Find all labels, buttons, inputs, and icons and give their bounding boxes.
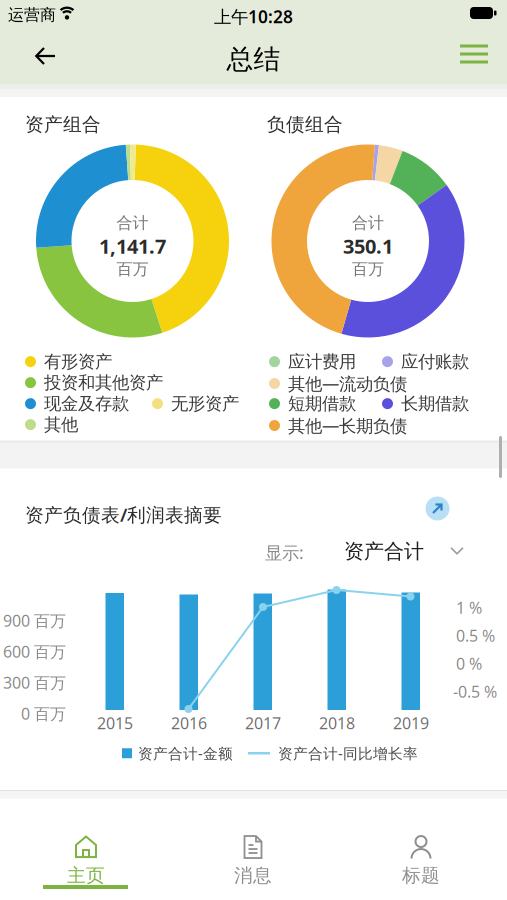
staticText: 现金及存款 <box>44 393 129 414</box>
staticText: 运营商 <box>8 5 56 25</box>
staticText: 投资和其他资产 <box>44 372 163 393</box>
staticText: 有形资产 <box>44 351 112 372</box>
staticText: 900 百万 <box>3 610 66 631</box>
button[interactable]: 消息 <box>193 828 313 894</box>
staticText: 百万 <box>116 259 148 279</box>
button[interactable]: 菜单 <box>450 34 498 74</box>
staticText: 显示: <box>265 541 304 564</box>
staticText: 应付账款 <box>401 351 469 372</box>
staticText: 无形资产 <box>171 393 239 414</box>
staticText: 2019 <box>393 712 429 734</box>
staticText: 应计费用 <box>288 351 356 372</box>
button[interactable]: 主页 <box>26 828 146 894</box>
staticText: 2016 <box>171 712 207 734</box>
staticText: 0.5 % <box>456 625 495 646</box>
staticText: 其他—长期负债 <box>288 414 407 437</box>
staticText: 2017 <box>245 712 281 734</box>
staticText: 上午10:28 <box>214 5 293 28</box>
staticText: 短期借款 <box>288 393 356 414</box>
staticText: 资产合计 <box>344 539 424 564</box>
staticText: 资产合计-同比增长率 <box>278 743 418 763</box>
staticText: 350.1 <box>343 233 393 259</box>
staticText: 600 百万 <box>3 641 66 662</box>
staticText: 资产负债表/利润表摘要 <box>25 502 222 527</box>
staticText: 资产合计-金额 <box>138 743 233 763</box>
staticText: 合计 <box>116 213 148 233</box>
staticText: 合计 <box>352 213 384 233</box>
staticText: 0 % <box>456 653 482 674</box>
staticText: 资产组合 <box>25 113 101 136</box>
staticText: 负债组合 <box>267 113 343 136</box>
staticText: 2015 <box>97 712 133 734</box>
staticText: 2018 <box>319 712 355 734</box>
staticText: 主页 <box>67 864 105 887</box>
staticText: 1 % <box>456 597 482 618</box>
staticText: 1,141.7 <box>99 233 166 259</box>
button[interactable]: 展开 <box>425 496 449 520</box>
staticText: 其他 <box>44 414 78 435</box>
staticText: 300 百万 <box>3 672 66 693</box>
staticText: 百万 <box>352 259 384 279</box>
staticText: -0.5 % <box>453 681 497 702</box>
staticText: 消息 <box>234 864 272 887</box>
staticText: 总结 <box>226 43 280 76</box>
staticText: 其他—流动负债 <box>288 372 407 395</box>
button[interactable]: 选择指标 <box>344 539 463 564</box>
staticText: 长期借款 <box>401 393 469 414</box>
button[interactable]: 标题 <box>361 828 481 894</box>
button[interactable]: 返回 <box>25 37 65 75</box>
staticText: 标题 <box>402 864 440 887</box>
staticText: 0 百万 <box>21 703 66 724</box>
